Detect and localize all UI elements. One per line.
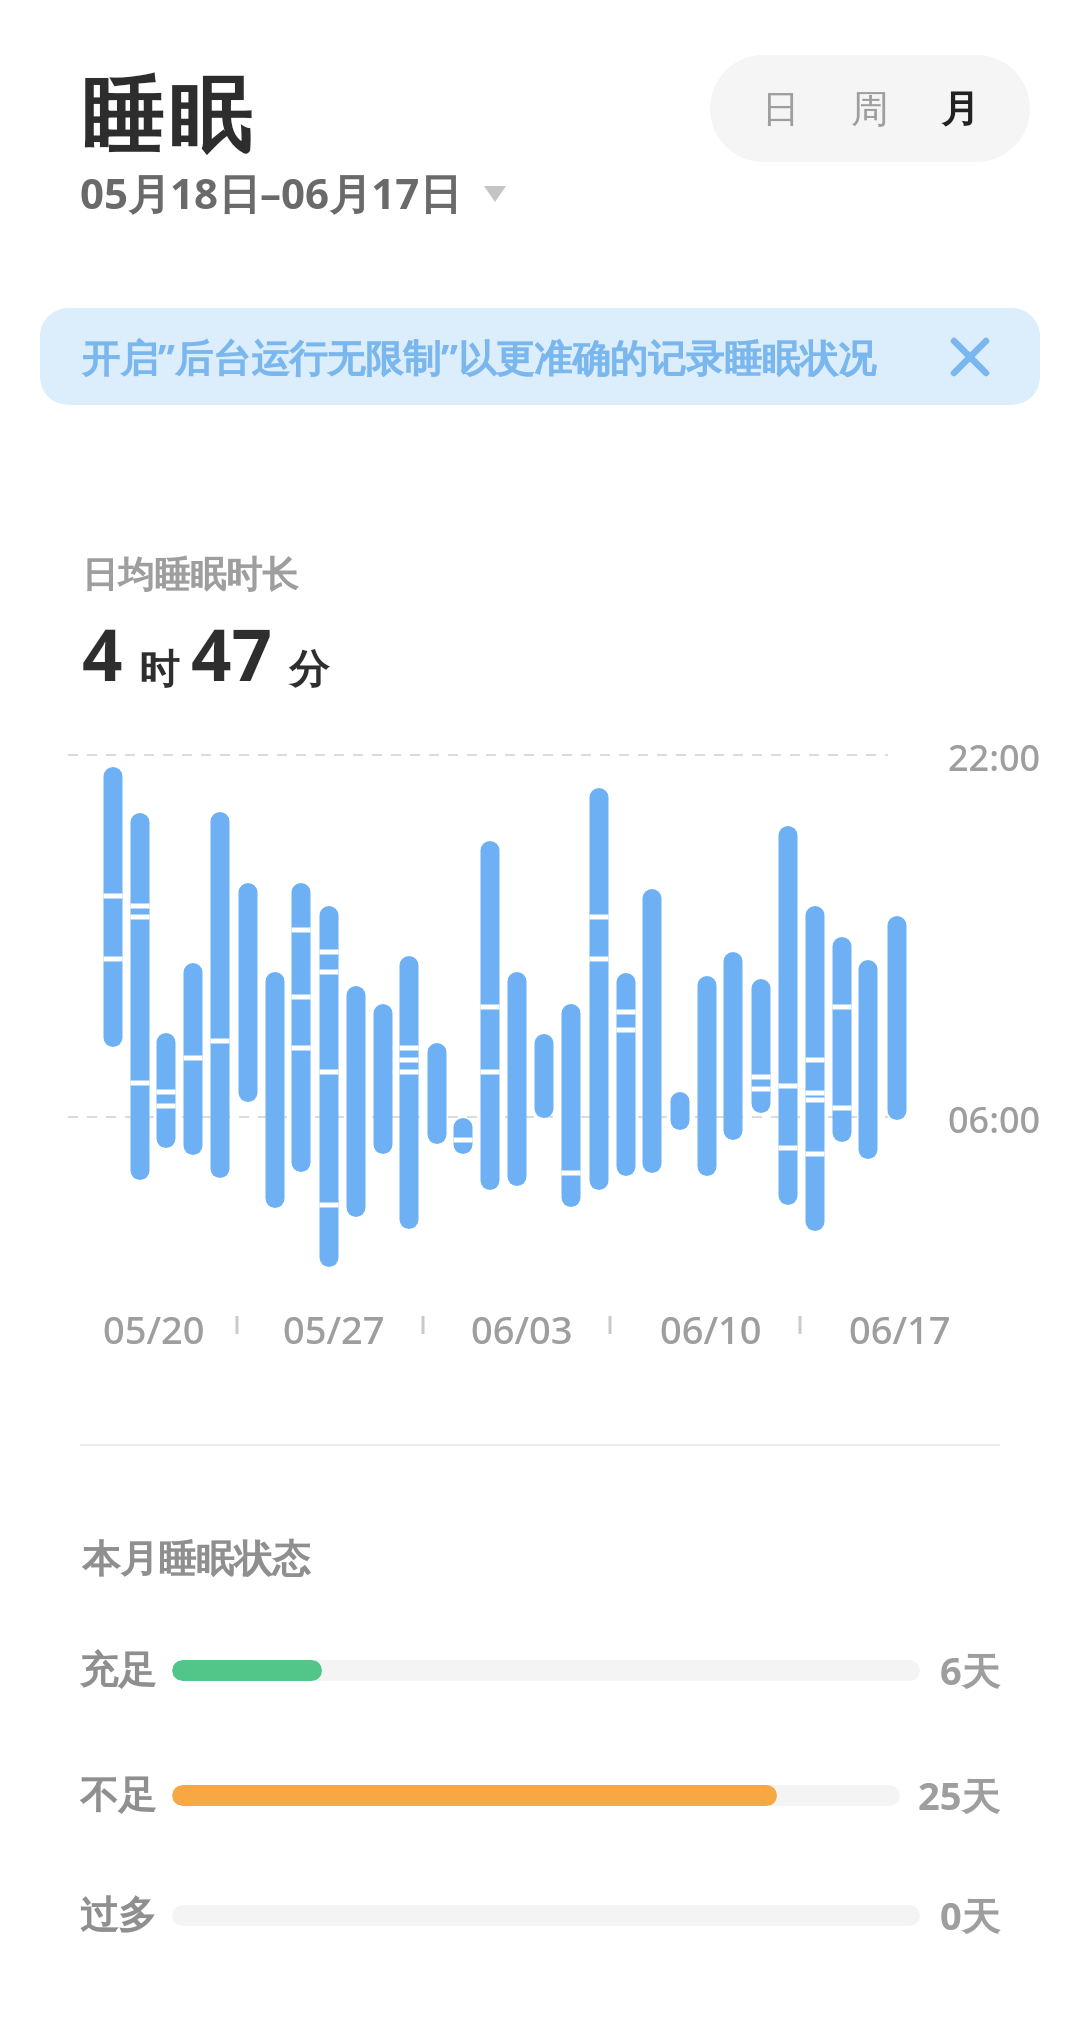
staticText: 睡眠 (78, 65, 254, 168)
button[interactable]: 开启”后台运行无限制”以更准确的记录睡眠状况 (40, 308, 1040, 405)
staticText: 05/27 (283, 1303, 385, 1355)
button[interactable]: 日 (710, 55, 1030, 162)
staticText: 日 (762, 85, 800, 133)
staticText: 不足 (80, 1771, 156, 1819)
staticText: 05/20 (103, 1303, 205, 1355)
staticText: 开启”后台运行无限制”以更准确的记录睡眠状况 (82, 331, 876, 383)
staticText: 过多 (80, 1891, 156, 1939)
staticText: 06:00 (948, 1095, 1041, 1144)
staticText: 本月睡眠状态 (82, 1535, 310, 1583)
staticText: 月 (941, 85, 979, 133)
staticText: 06/10 (660, 1303, 762, 1355)
staticText: 47 (191, 605, 273, 702)
staticText: 06/17 (849, 1303, 951, 1355)
staticText: 周 (851, 85, 889, 133)
staticText: 4 (82, 605, 123, 702)
staticText: 日均睡眠时长 (82, 552, 298, 597)
button[interactable] (172, 1785, 900, 1806)
staticText: 06/03 (471, 1303, 573, 1355)
staticText: 时 (139, 644, 179, 694)
staticText: 05月18日–06月17日 (80, 164, 462, 221)
staticText: 分 (289, 644, 329, 694)
button[interactable]: 05月18日–06月17日 (80, 164, 506, 221)
staticText: 25天 (918, 1769, 1000, 1821)
staticText: 0天 (940, 1889, 1000, 1941)
staticText: 充足 (80, 1646, 156, 1694)
staticText: 6天 (940, 1644, 1000, 1696)
button[interactable] (172, 1660, 920, 1681)
staticText: 22:00 (948, 733, 1041, 782)
